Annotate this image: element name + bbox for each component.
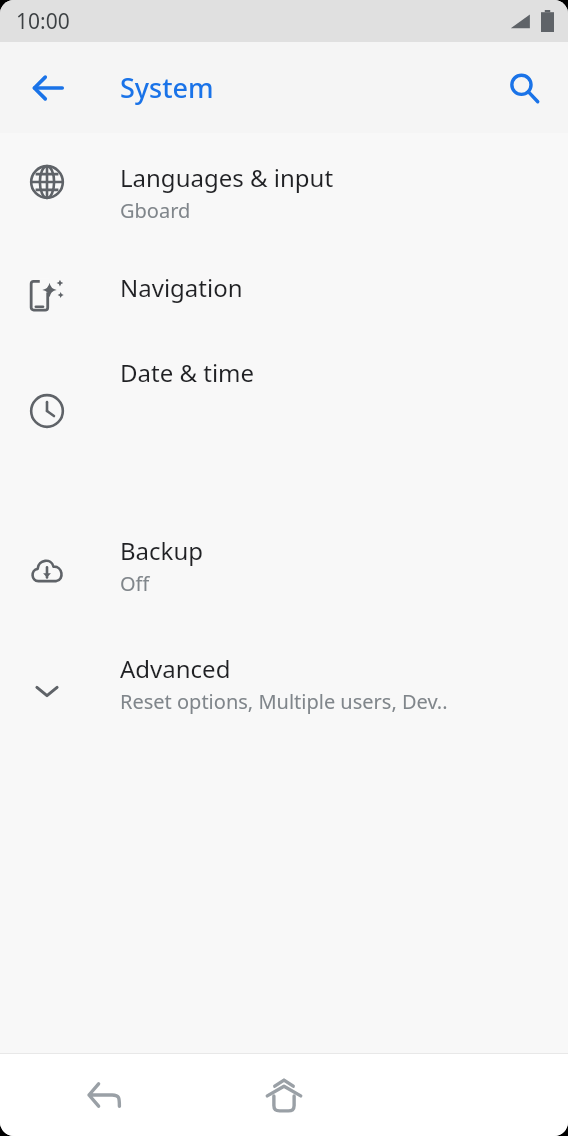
staticText: System bbox=[120, 69, 214, 106]
staticText: Advanced bbox=[120, 652, 231, 685]
button[interactable]: Languages & input bbox=[0, 133, 568, 246]
staticText: Backup bbox=[120, 534, 203, 567]
staticText: Date & time bbox=[120, 356, 255, 389]
button[interactable]: Search bbox=[490, 54, 558, 122]
button[interactable]: Backup bbox=[0, 506, 568, 634]
button[interactable]: Back bbox=[74, 1064, 136, 1126]
staticText: Navigation bbox=[120, 271, 243, 304]
button[interactable]: Date & time bbox=[0, 342, 568, 506]
button[interactable]: Advanced bbox=[0, 634, 568, 730]
button[interactable]: Navigation bbox=[0, 246, 568, 342]
staticText: Languages & input bbox=[120, 161, 334, 194]
staticText: Reset options, Multiple users, Dev.. bbox=[120, 688, 448, 715]
staticText: Off bbox=[120, 570, 150, 597]
button[interactable]: Home bbox=[250, 1061, 318, 1129]
staticText: Gboard bbox=[120, 197, 191, 224]
staticText: 10:00 bbox=[16, 7, 70, 36]
button[interactable]: Back bbox=[14, 54, 82, 122]
